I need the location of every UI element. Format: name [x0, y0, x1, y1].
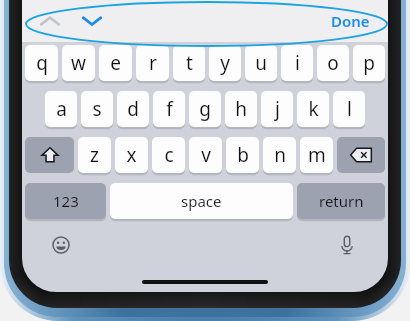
staticText: l — [347, 96, 352, 122]
staticText: u — [255, 50, 267, 76]
button[interactable]: n — [263, 137, 296, 173]
button[interactable]: 123 — [25, 183, 106, 219]
staticText: a — [56, 96, 67, 122]
staticText: c — [164, 142, 174, 168]
staticText: m — [308, 142, 326, 168]
staticText: y — [220, 50, 230, 76]
button[interactable]: Shift — [25, 137, 74, 173]
staticText: space — [181, 191, 222, 211]
button[interactable]: i — [281, 45, 313, 81]
button[interactable]: e — [99, 45, 132, 81]
button[interactable]: h — [225, 91, 257, 127]
staticText: i — [295, 50, 300, 76]
button[interactable]: Emoji keyboard — [46, 230, 76, 260]
button[interactable]: w — [62, 45, 95, 81]
staticText: t — [186, 50, 193, 76]
button[interactable]: r — [136, 45, 169, 81]
staticText: n — [274, 142, 286, 168]
button[interactable]: x — [115, 137, 148, 173]
button[interactable]: Next field — [74, 4, 110, 38]
button[interactable]: q — [25, 45, 58, 81]
button[interactable]: z — [78, 137, 111, 173]
staticText: e — [110, 50, 121, 76]
staticText: Done — [331, 11, 370, 31]
staticText: f — [166, 96, 173, 122]
button[interactable]: u — [245, 45, 277, 81]
button[interactable]: y — [209, 45, 241, 81]
staticText: g — [199, 96, 211, 122]
staticText: h — [235, 96, 247, 122]
button[interactable]: s — [81, 91, 113, 127]
staticText: r — [149, 50, 157, 76]
staticText: v — [201, 142, 211, 168]
button[interactable]: f — [153, 91, 185, 127]
button[interactable]: v — [189, 137, 222, 173]
staticText: k — [308, 96, 319, 122]
staticText: o — [327, 50, 339, 76]
button[interactable]: b — [226, 137, 259, 173]
button[interactable]: Dictation — [332, 230, 362, 260]
staticText: p — [363, 50, 375, 76]
button[interactable]: c — [152, 137, 185, 173]
button[interactable]: j — [261, 91, 293, 127]
button[interactable]: t — [173, 45, 205, 81]
staticText: d — [127, 96, 139, 122]
button[interactable]: d — [117, 91, 149, 127]
button[interactable]: l — [333, 91, 365, 127]
button[interactable]: m — [300, 137, 333, 173]
staticText: x — [126, 142, 137, 168]
staticText: b — [237, 142, 249, 168]
staticText: j — [275, 96, 280, 122]
staticText: s — [92, 96, 102, 122]
button[interactable]: g — [189, 91, 221, 127]
staticText: w — [71, 50, 86, 76]
button[interactable]: k — [297, 91, 329, 127]
button[interactable]: return — [297, 183, 385, 219]
button[interactable]: p — [353, 45, 385, 81]
button[interactable]: o — [317, 45, 349, 81]
button[interactable]: Done — [331, 11, 370, 31]
button[interactable]: a — [45, 91, 77, 127]
button[interactable]: Previous field — [32, 4, 68, 38]
staticText: z — [90, 142, 99, 168]
button[interactable]: space — [110, 183, 293, 219]
staticText: 123 — [53, 191, 79, 211]
staticText: return — [319, 191, 364, 211]
staticText: q — [36, 50, 48, 76]
button[interactable]: Backspace — [337, 137, 385, 173]
